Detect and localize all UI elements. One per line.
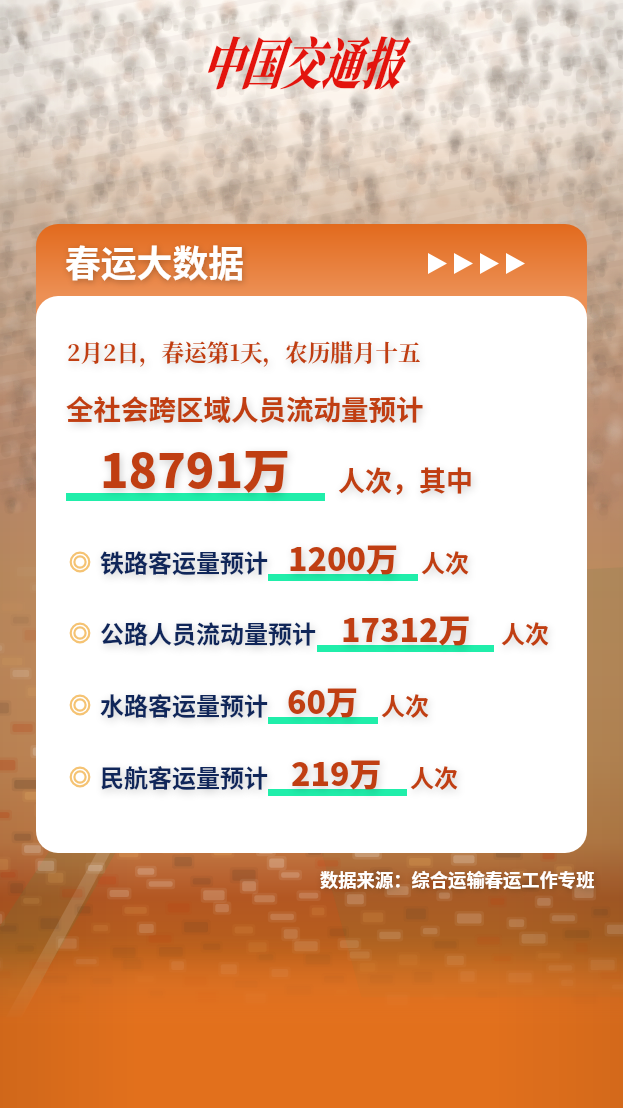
button[interactable] bbox=[60, 607, 560, 659]
staticText: 全社会跨区域人员流动量预计 bbox=[66, 388, 424, 428]
staticText: 18791万 bbox=[100, 433, 291, 501]
staticText: 水路客运量预计 bbox=[100, 687, 268, 722]
staticText: 人次 bbox=[501, 615, 549, 650]
button[interactable]: 春运大数据 bbox=[36, 224, 587, 322]
staticText: 219万 bbox=[291, 749, 382, 795]
other: More bbox=[428, 253, 538, 275]
staticText: 人次 bbox=[421, 544, 469, 579]
staticText: 人次，其中 bbox=[338, 460, 473, 499]
button[interactable] bbox=[60, 751, 560, 803]
staticText: 人次 bbox=[410, 759, 458, 794]
staticText: 1200万 bbox=[288, 534, 398, 580]
staticText: 春运大数据 bbox=[65, 235, 244, 287]
button[interactable] bbox=[60, 536, 560, 588]
staticText: 铁路客运量预计 bbox=[100, 544, 268, 579]
staticText: 2月2日，春运第1天，农历腊月十五 bbox=[67, 335, 421, 367]
staticText: 17312万 bbox=[341, 605, 471, 651]
staticText: 民航客运量预计 bbox=[100, 759, 268, 794]
staticText: 数据来源：综合运输春运工作专班 bbox=[320, 866, 595, 892]
staticText: 60万 bbox=[287, 677, 358, 723]
staticText: 中国交通报 bbox=[201, 20, 401, 100]
button[interactable] bbox=[60, 679, 560, 731]
staticText: 公路人员流动量预计 bbox=[100, 615, 316, 650]
staticText: 人次 bbox=[381, 687, 429, 722]
